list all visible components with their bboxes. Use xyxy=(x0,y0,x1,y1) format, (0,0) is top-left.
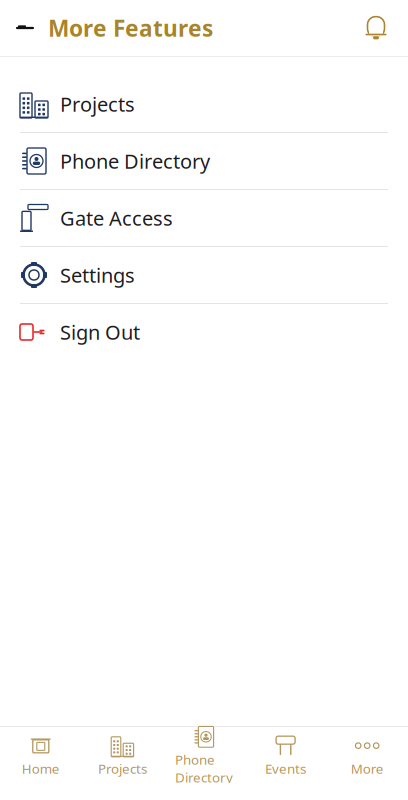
button[interactable]: Sign Out xyxy=(0,304,408,360)
staticText: Home xyxy=(22,760,60,777)
button[interactable]: Home xyxy=(0,727,82,783)
button[interactable]: Settings xyxy=(0,247,408,303)
button[interactable]: More xyxy=(326,727,408,783)
button[interactable]: Notifications xyxy=(356,8,408,48)
button[interactable]: Events xyxy=(245,727,326,783)
staticText: Events xyxy=(265,760,306,777)
staticText: Projects xyxy=(98,760,147,777)
staticText: Phone Directory xyxy=(175,751,233,786)
button[interactable]: Back xyxy=(0,11,42,45)
button[interactable]: Phone Directory xyxy=(0,133,408,189)
staticText: Phone Directory xyxy=(60,148,210,174)
staticText: More xyxy=(351,760,384,777)
button[interactable]: Phone Directory xyxy=(163,718,245,792)
staticText: Sign Out xyxy=(60,319,140,345)
button[interactable]: Projects xyxy=(82,727,163,783)
staticText: Projects xyxy=(60,91,135,117)
staticText: Settings xyxy=(60,262,135,288)
button[interactable]: Projects xyxy=(0,76,408,132)
button[interactable]: Gate Access xyxy=(0,190,408,246)
staticText: More Features xyxy=(48,13,213,43)
staticText: Gate Access xyxy=(60,205,173,231)
